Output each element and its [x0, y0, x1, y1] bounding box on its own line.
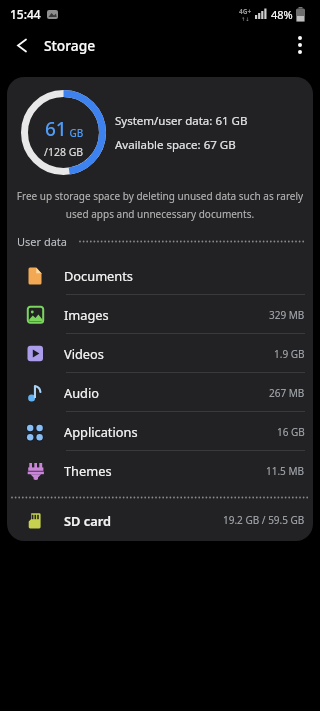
staticText: Applications — [64, 423, 138, 440]
staticText: 1.9 GB — [274, 347, 305, 361]
staticText: Audio — [64, 384, 99, 401]
button[interactable]: Applications — [7, 412, 313, 451]
staticText: 11.5 MB — [266, 464, 305, 478]
staticText: 16 GB — [277, 425, 305, 439]
staticText: Documents — [64, 267, 133, 284]
staticText: 4G+ — [239, 7, 252, 16]
staticText: Themes — [64, 462, 112, 479]
button[interactable]: SD card — [7, 499, 313, 541]
staticText: /128 GB — [44, 145, 84, 159]
staticText: Images — [64, 306, 109, 323]
staticText: Free up storage space by deleting unused… — [7, 189, 313, 203]
staticText: User data — [17, 234, 67, 249]
button[interactable]: Images — [7, 295, 313, 334]
button[interactable] — [280, 28, 320, 62]
staticText: 19.2 GB / 59.5 GB — [223, 513, 305, 527]
staticText: Storage — [44, 36, 96, 55]
staticText: Videos — [64, 345, 104, 362]
staticText: 61 — [45, 116, 67, 142]
staticText: Available space: 67 GB — [115, 137, 236, 153]
staticText: ↑↓ — [241, 16, 250, 22]
button[interactable]: Audio — [7, 373, 313, 412]
staticText: SD card — [64, 512, 111, 529]
staticText: System/user data: 61 GB — [115, 113, 248, 129]
button[interactable] — [0, 28, 44, 62]
button[interactable]: Themes — [7, 451, 313, 490]
staticText: 48% — [271, 7, 293, 22]
staticText: GB — [67, 126, 84, 140]
staticText: used apps and unnecessary documents. — [7, 207, 313, 221]
staticText: 15:44 — [10, 6, 41, 22]
button[interactable]: Documents — [7, 256, 313, 295]
staticText: 267 MB — [269, 386, 305, 400]
staticText: 329 MB — [269, 308, 305, 322]
button[interactable]: Videos — [7, 334, 313, 373]
